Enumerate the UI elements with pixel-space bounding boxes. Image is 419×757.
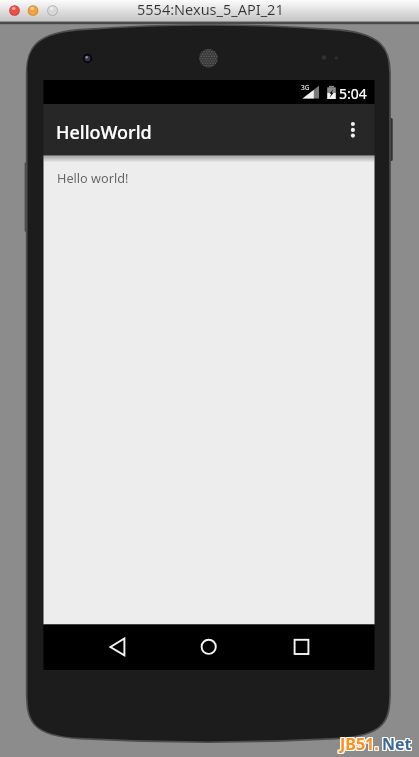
staticText: JB51.	[339, 733, 378, 755]
button[interactable]	[96, 628, 140, 666]
staticText: JB51.	[341, 734, 380, 756]
staticText: HelloWorld	[56, 120, 152, 145]
staticText: Net	[381, 732, 411, 754]
staticText: Net	[383, 733, 413, 755]
staticText: 3G	[301, 83, 310, 92]
staticText: JB51.	[341, 732, 380, 754]
staticText: JB51.	[340, 733, 379, 755]
staticText: Net	[382, 732, 412, 754]
button[interactable]	[341, 116, 365, 144]
staticText: Net	[383, 732, 413, 754]
staticText: Hello world!	[57, 169, 129, 186]
button[interactable]	[187, 628, 231, 666]
staticText: JB51.	[339, 732, 378, 754]
staticText: JB51.	[339, 734, 378, 756]
staticText: Net	[382, 733, 412, 755]
staticText: 5554:Nexus_5_API_21	[137, 0, 284, 19]
staticText: Net	[381, 734, 411, 756]
staticText: 5:04	[339, 84, 367, 103]
staticText: JB51.	[341, 733, 380, 755]
staticText: Net	[381, 733, 411, 755]
staticText: Net	[383, 734, 413, 756]
staticText: JB51.	[340, 732, 379, 754]
button[interactable]	[280, 628, 324, 666]
staticText: Net	[382, 734, 412, 756]
staticText: JB51.	[340, 734, 379, 756]
